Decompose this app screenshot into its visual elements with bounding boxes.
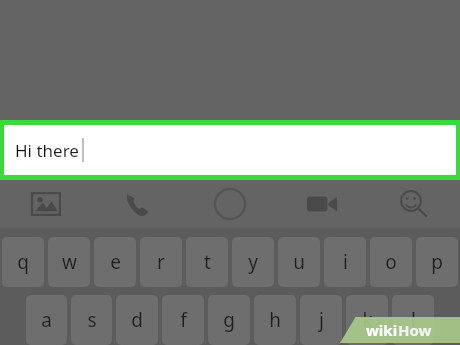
button[interactable]: Video call — [276, 180, 368, 228]
staticText: q — [17, 249, 29, 275]
staticText: l — [411, 307, 416, 333]
staticText: w — [62, 249, 77, 275]
button[interactable]: r — [140, 237, 182, 287]
staticText: How — [398, 320, 432, 340]
staticText: f — [180, 307, 187, 333]
staticText: p — [431, 249, 443, 275]
staticText: s — [87, 307, 97, 333]
button[interactable]: q — [2, 237, 44, 287]
staticText: wiki — [366, 320, 398, 340]
button[interactable]: Send image — [0, 180, 92, 228]
staticText: o — [385, 249, 397, 275]
button[interactable]: Record — [184, 180, 276, 228]
button[interactable]: u — [278, 237, 320, 287]
button[interactable]: Search emoji — [368, 180, 460, 228]
staticText: t — [204, 249, 211, 275]
button[interactable]: o — [370, 237, 412, 287]
staticText: Hi there — [15, 139, 79, 162]
staticText: k — [362, 307, 373, 333]
staticText: d — [131, 307, 143, 333]
staticText: a — [41, 307, 52, 333]
staticText: e — [110, 249, 121, 275]
staticText: g — [223, 307, 235, 333]
button[interactable]: k — [346, 295, 388, 345]
button[interactable]: Voice call — [92, 180, 184, 228]
staticText: u — [293, 249, 305, 275]
button[interactable]: d — [116, 295, 158, 345]
button[interactable]: f — [162, 295, 204, 345]
staticText: y — [248, 249, 258, 275]
button[interactable]: w — [48, 237, 90, 287]
button[interactable]: i — [324, 237, 366, 287]
button[interactable]: Hi there — [4, 125, 456, 175]
button[interactable]: t — [186, 237, 228, 287]
staticText: h — [269, 307, 281, 333]
staticText: r — [157, 249, 165, 275]
button[interactable]: g — [208, 295, 250, 345]
staticText: j — [319, 307, 324, 333]
button[interactable]: s — [71, 295, 112, 345]
button[interactable]: p — [416, 237, 458, 287]
button[interactable]: y — [232, 237, 274, 287]
button[interactable]: e — [94, 237, 136, 287]
button[interactable]: l — [392, 295, 434, 345]
button[interactable]: j — [300, 295, 342, 345]
staticText: i — [343, 249, 348, 275]
button[interactable]: a — [26, 295, 67, 345]
button[interactable]: h — [254, 295, 296, 345]
